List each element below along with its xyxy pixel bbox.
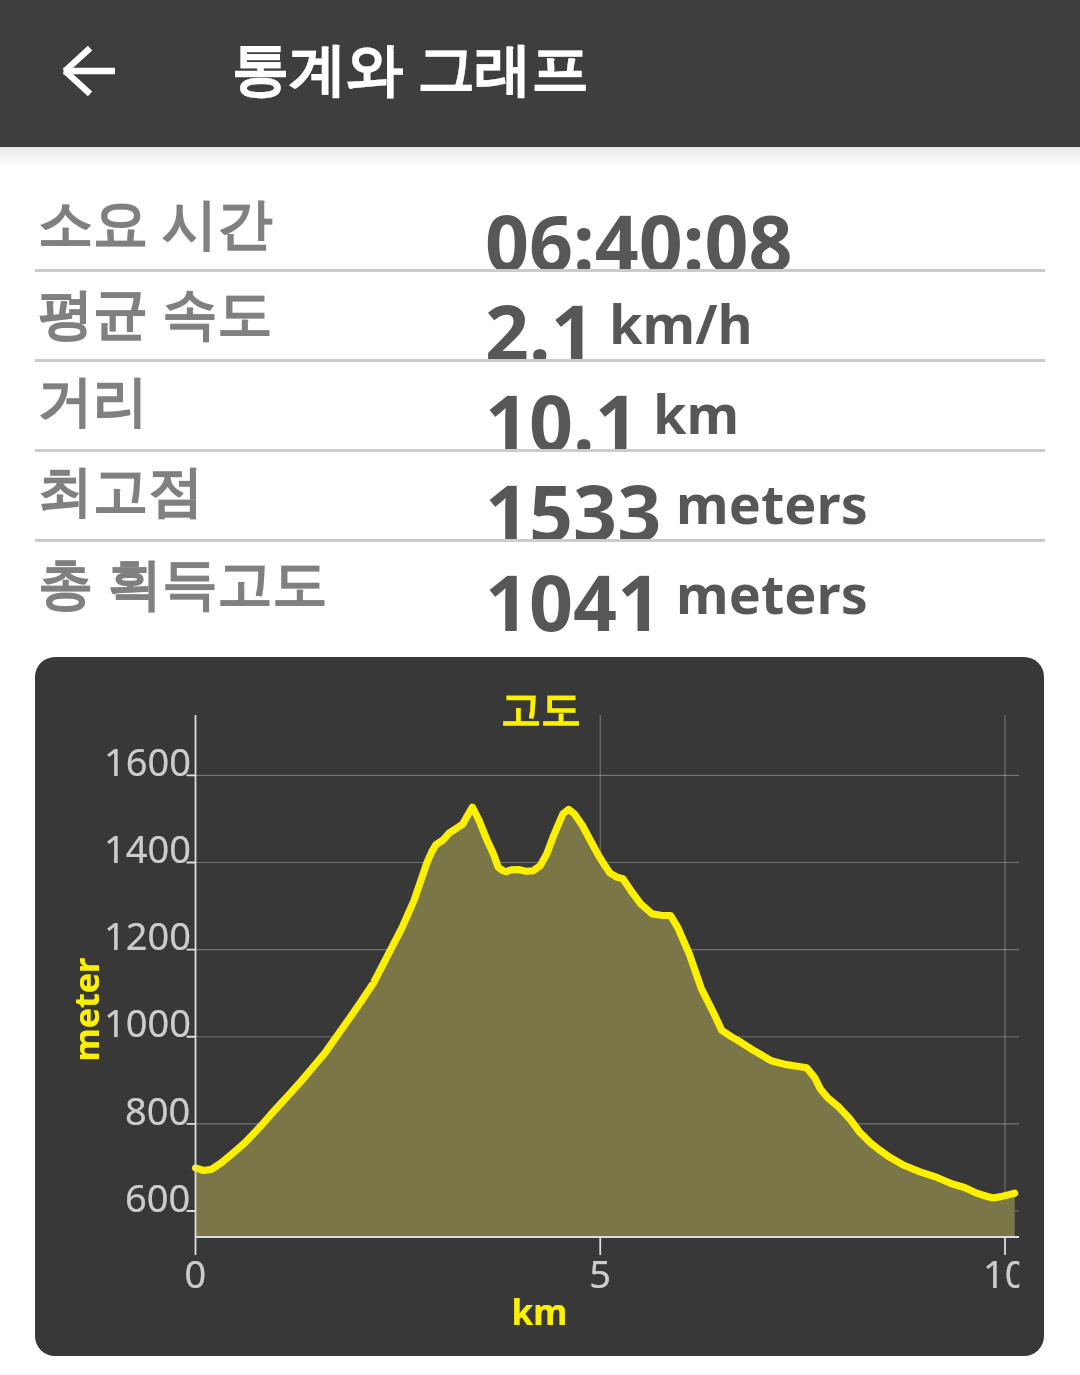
staticText: meters [676,466,868,540]
staticText: 10.1 [485,369,639,452]
staticText: meters [676,556,868,630]
staticText: 거리 [37,368,147,437]
button[interactable]: 거리 [0,362,1080,452]
staticText: 통계와 그래프 [231,29,588,107]
button[interactable]: 최고점 [0,452,1080,542]
staticText: km/h [609,286,753,360]
staticText: 소요 시간 [37,185,272,260]
button[interactable]: Back [44,26,134,116]
staticText: 2.1 [485,279,595,362]
button[interactable]: 소요 시간 [0,182,1080,272]
staticText: 평균 속도 [37,275,272,350]
button[interactable]: 총 획득고도 [0,542,1080,632]
staticText: 최고점 [37,458,202,527]
button[interactable]: 평균 속도 [0,272,1080,362]
staticText: 1041 [485,549,662,632]
staticText: km [653,376,740,450]
staticText: 총 획득고도 [37,545,327,620]
staticText: 1533 [485,459,662,542]
staticText: 06:40:08 [485,189,793,272]
